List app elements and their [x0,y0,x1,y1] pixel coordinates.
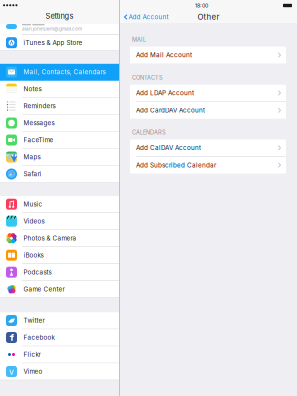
staticText: Podcasts [23,268,51,276]
staticText: v [9,366,14,377]
staticText: Videos [23,217,44,225]
staticText: Add Subscribed Calendar [136,161,216,169]
button[interactable]: Messages [0,115,119,132]
staticText: Maps [23,153,40,161]
button[interactable]: Maps [0,149,119,166]
button[interactable]: Add LDAP Account [130,85,286,102]
staticText: Mail, Contacts, Calendars [23,68,105,76]
staticText: Facebook [23,334,54,341]
staticText: Flickr [23,351,40,358]
button[interactable]: Add Account [120,13,168,21]
button[interactable]: Add CardDAV Account [130,102,286,119]
button[interactable]: Videos [0,213,119,230]
staticText: CALENDARS [132,129,166,136]
button[interactable]: Facebook [0,329,119,346]
button[interactable]: Add CalDAV Account [130,139,286,157]
staticText: Settings [45,11,73,20]
staticText: Music [23,200,42,208]
staticText: Add CardDAV Account [136,106,205,114]
button[interactable]: Twitter [0,312,119,329]
button[interactable]: Mail, Contacts, Calendars [0,64,119,81]
button[interactable]: v [0,363,119,380]
button[interactable]: Add Mail Account [130,47,286,63]
staticText: alan.jones.wm@gmail.com [22,26,82,32]
staticText: Add Mail Account [136,51,192,59]
staticText: CONTACTS [132,74,163,81]
button[interactable]: alan.jones.wm@gmail.com [0,24,119,34]
button[interactable]: Safari [0,166,119,183]
staticText: Add CalDAV Account [136,144,201,152]
staticText: iTunes & App Store [23,39,82,46]
button[interactable]: Add Subscribed Calendar [130,157,286,173]
staticText: Photos & Camera [23,234,76,242]
button[interactable]: FaceTime [0,132,119,149]
button[interactable]: Reminders [0,98,119,115]
staticText: Reminders [23,102,55,110]
staticText: Game Center [23,285,64,293]
button[interactable]: Photos & Camera [0,230,119,247]
staticText: Add Account [128,13,168,21]
button[interactable]: iBooks [0,247,119,264]
button[interactable]: Music [0,196,119,213]
staticText: 18:00 [195,2,208,9]
staticText: Safari [23,170,41,178]
staticText: Other [197,12,219,22]
staticText: Add LDAP Account [136,89,194,97]
staticText: Twitter [23,317,44,324]
staticText: Notes [23,85,41,93]
staticText: Messages [23,119,54,127]
staticText: iBooks [23,251,43,259]
button[interactable]: Notes [0,81,119,98]
staticText: Vimeo [23,368,42,375]
button[interactable]: Podcasts [0,264,119,281]
button[interactable]: Flickr [0,346,119,363]
button[interactable]: Game Center [0,281,119,298]
staticText: MAIL [132,36,146,43]
button[interactable]: iTunes & App Store [0,35,119,51]
staticText: FaceTime [23,136,53,144]
